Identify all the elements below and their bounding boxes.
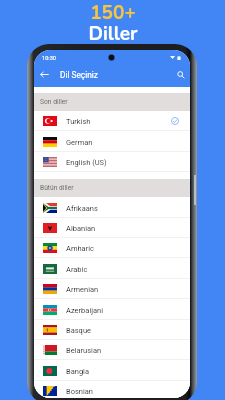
button[interactable]: Basque xyxy=(34,320,190,340)
staticText: Bütün diller xyxy=(40,184,74,192)
button[interactable]: German xyxy=(34,132,190,152)
button[interactable]: Search xyxy=(174,68,187,81)
button[interactable]: Belarusian xyxy=(34,340,190,360)
staticText: 10:30 xyxy=(42,55,56,62)
button[interactable]: Azerbaijani xyxy=(34,300,190,320)
button[interactable]: Bosnian xyxy=(34,381,190,398)
staticText: Arabic xyxy=(66,265,88,274)
button[interactable]: Amharic xyxy=(34,238,190,258)
button[interactable]: Afrikaans xyxy=(34,198,190,218)
button[interactable]: Arabic xyxy=(34,259,190,279)
staticText: Diller xyxy=(88,21,138,43)
staticText: German xyxy=(66,138,93,147)
staticText: Turkish xyxy=(66,117,91,126)
staticText: Son diller xyxy=(40,98,68,106)
staticText: Bangla xyxy=(66,367,90,376)
staticText: English (US) xyxy=(66,158,107,167)
button[interactable]: Albanian xyxy=(34,218,190,238)
button[interactable]: Armenian xyxy=(34,279,190,299)
staticText: Amharic xyxy=(66,244,94,253)
staticText: 150+ xyxy=(90,0,136,22)
button[interactable]: English (US) xyxy=(34,152,190,172)
staticText: Albanian xyxy=(66,224,96,233)
button[interactable]: Back xyxy=(38,68,51,81)
staticText: Belarusian xyxy=(66,346,102,355)
staticText: Armenian xyxy=(66,285,99,294)
staticText: Afrikaans xyxy=(66,204,98,213)
staticText: Azerbaijani xyxy=(66,306,104,315)
staticText: Dil Seçiniz xyxy=(60,70,98,80)
staticText: Bosnian xyxy=(66,387,94,396)
button[interactable]: Bangla xyxy=(34,361,190,381)
button[interactable]: Turkish xyxy=(34,111,190,131)
staticText: Basque xyxy=(66,326,91,335)
